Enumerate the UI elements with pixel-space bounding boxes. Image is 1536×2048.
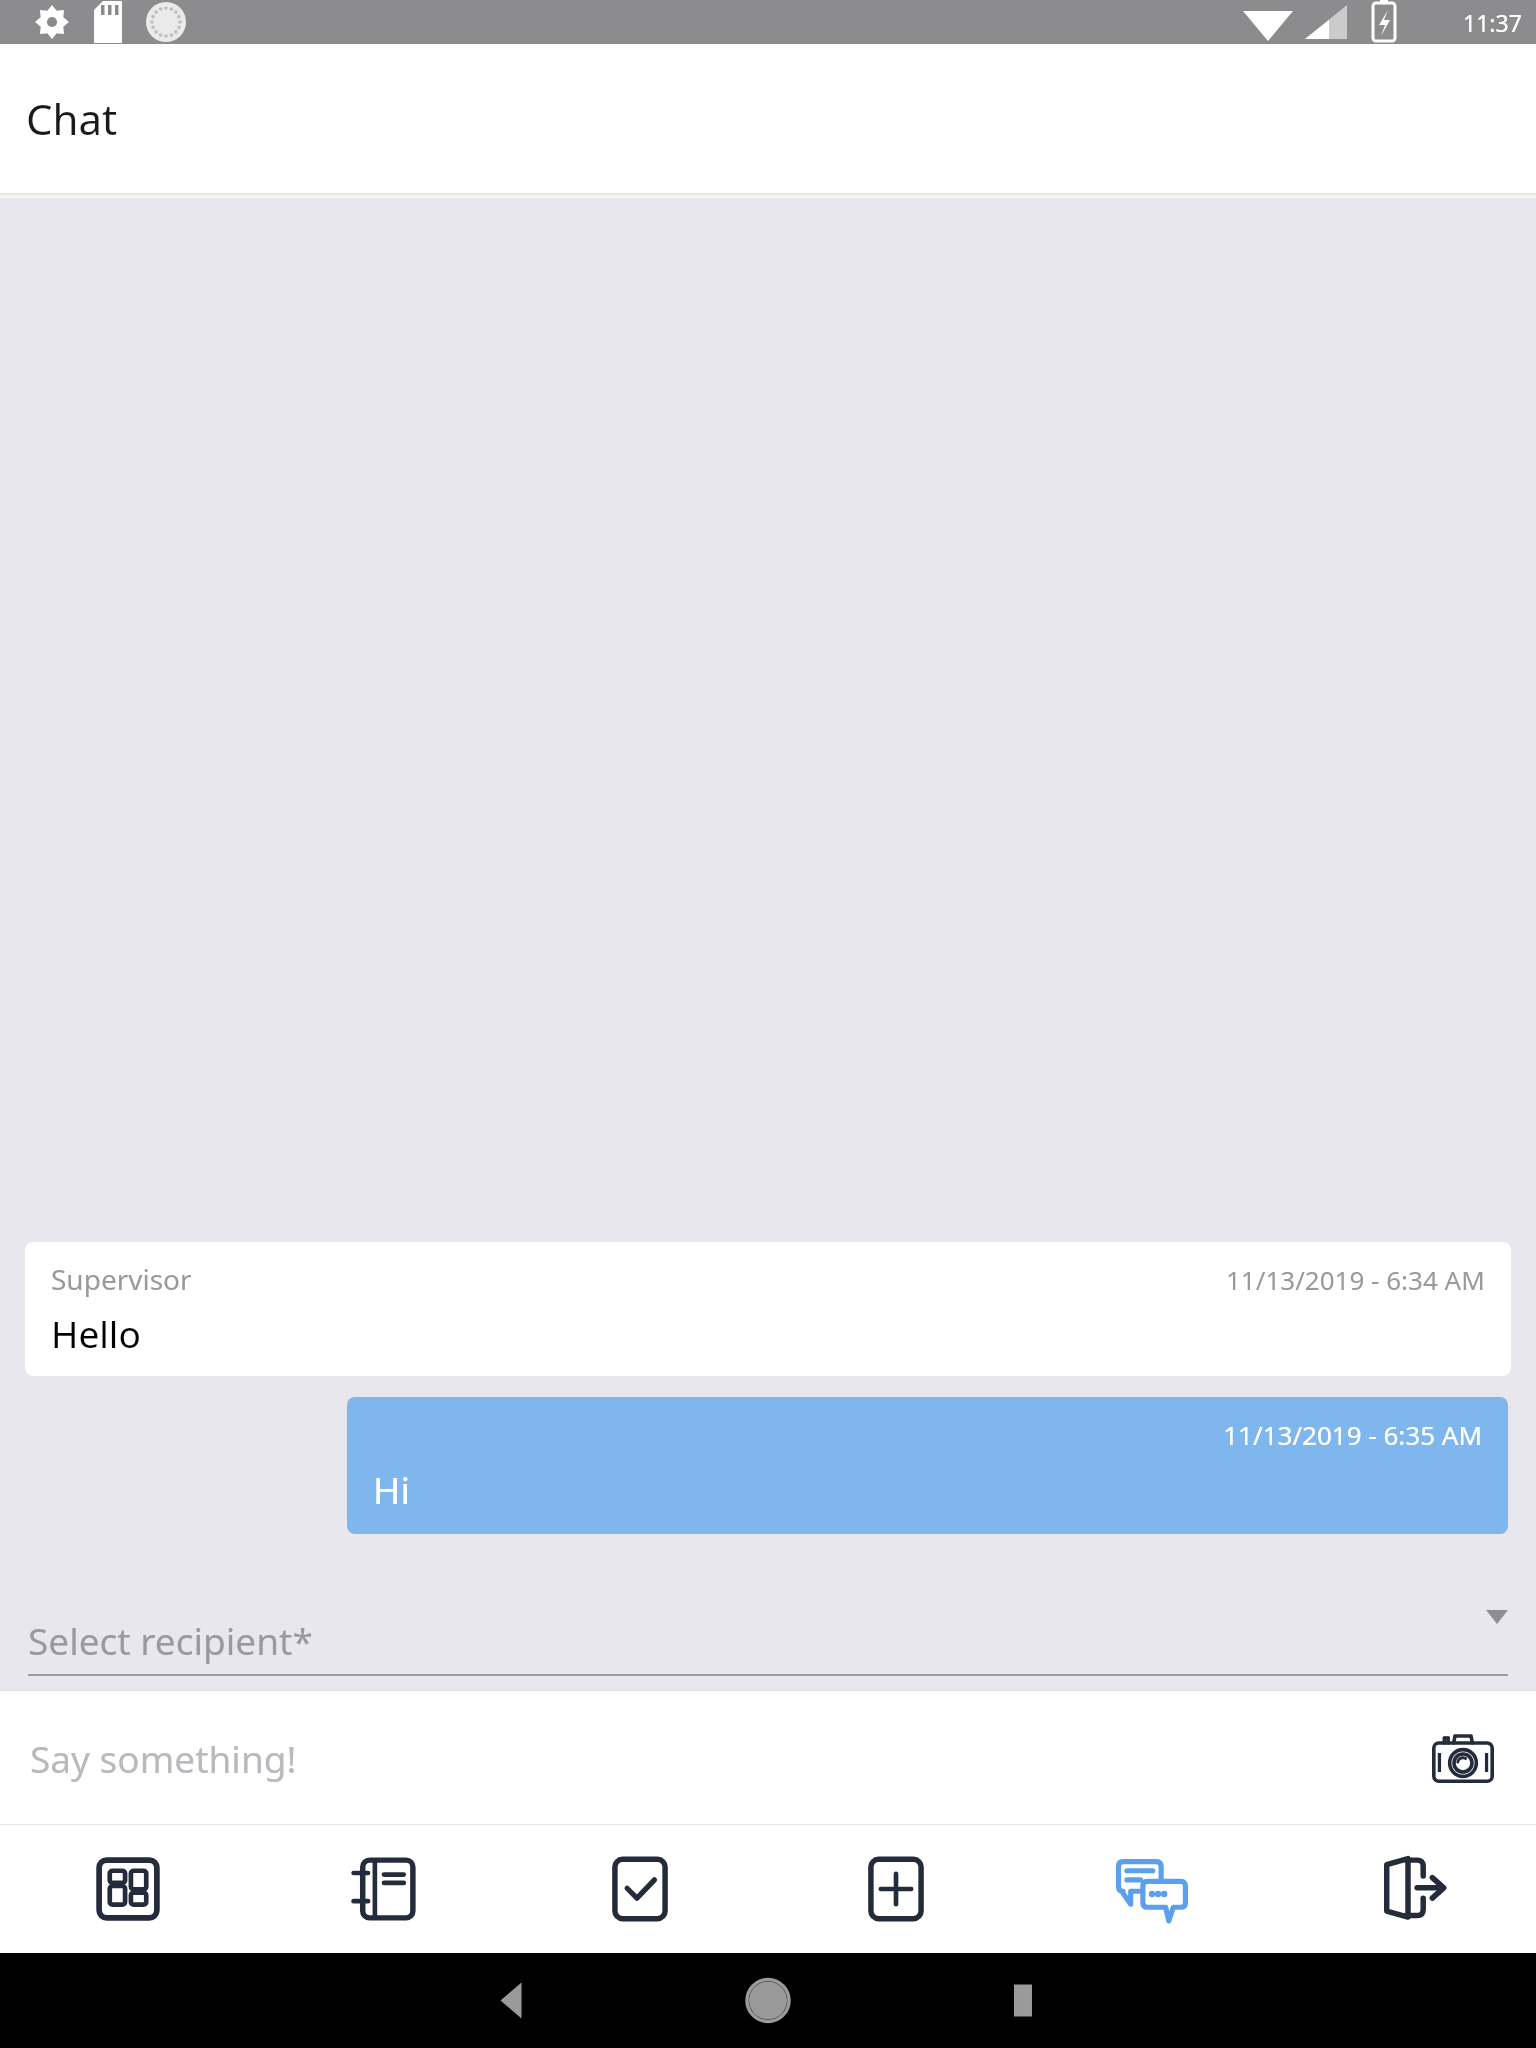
button[interactable]: Chat — [1024, 1825, 1280, 1953]
staticText: Chat — [26, 90, 118, 147]
staticText: 11:37 — [1463, 7, 1522, 38]
staticText: Hello — [51, 1308, 141, 1358]
button[interactable]: Select recipient* — [28, 1606, 1508, 1676]
button[interactable]: Supervisor — [25, 1242, 1511, 1376]
button[interactable]: Dashboard — [0, 1825, 256, 1953]
button[interactable]: Logout — [1280, 1825, 1536, 1953]
staticText: Supervisor — [51, 1260, 192, 1298]
button[interactable]: Take photo — [1420, 1715, 1506, 1801]
button[interactable]: Tasks — [512, 1825, 768, 1953]
staticText: 11/13/2019 - 6:35 AM — [373, 1417, 1482, 1452]
staticText: Hi — [373, 1464, 410, 1514]
button[interactable]: Say something! — [30, 1733, 1420, 1783]
button[interactable]: Journal — [256, 1825, 512, 1953]
staticText: 11/13/2019 - 6:34 AM — [1226, 1262, 1485, 1297]
staticText: Select recipient* — [28, 1615, 313, 1665]
staticText: Say something! — [30, 1733, 297, 1783]
button[interactable]: Add — [768, 1825, 1024, 1953]
button[interactable]: 11/13/2019 - 6:35 AM — [347, 1397, 1508, 1534]
